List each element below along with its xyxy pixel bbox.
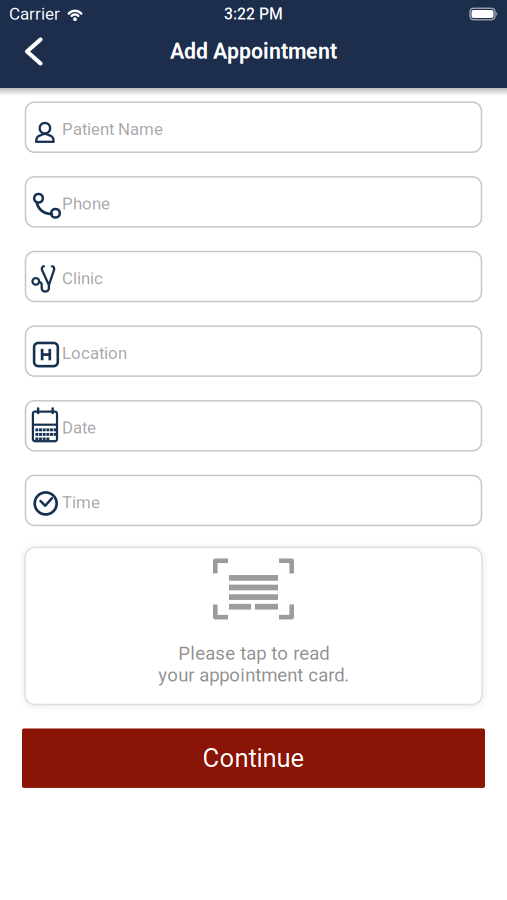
staticText: Location <box>62 343 127 363</box>
staticText: Date <box>62 418 96 438</box>
button[interactable]: Continue <box>22 728 485 788</box>
button[interactable]: Read appointment card <box>25 547 482 704</box>
staticText: Phone <box>62 194 110 214</box>
staticText: Carrier <box>9 4 60 24</box>
staticText: Clinic <box>62 269 103 288</box>
button[interactable]: Back <box>0 30 56 73</box>
staticText: Patient Name <box>62 119 163 139</box>
button[interactable]: Location <box>25 326 481 376</box>
staticText: Add Appointment <box>170 39 337 64</box>
button[interactable]: Phone <box>25 177 481 227</box>
button[interactable]: Patient Name <box>25 102 481 152</box>
button[interactable]: Clinic <box>25 251 481 301</box>
staticText: Time <box>62 493 100 512</box>
button[interactable]: Time <box>25 475 481 525</box>
staticText: Continue <box>202 743 304 773</box>
button[interactable]: Date <box>25 401 481 451</box>
staticText: Please tap to read your appointment card… <box>158 642 349 686</box>
staticText: 3:22 PM <box>224 5 283 23</box>
